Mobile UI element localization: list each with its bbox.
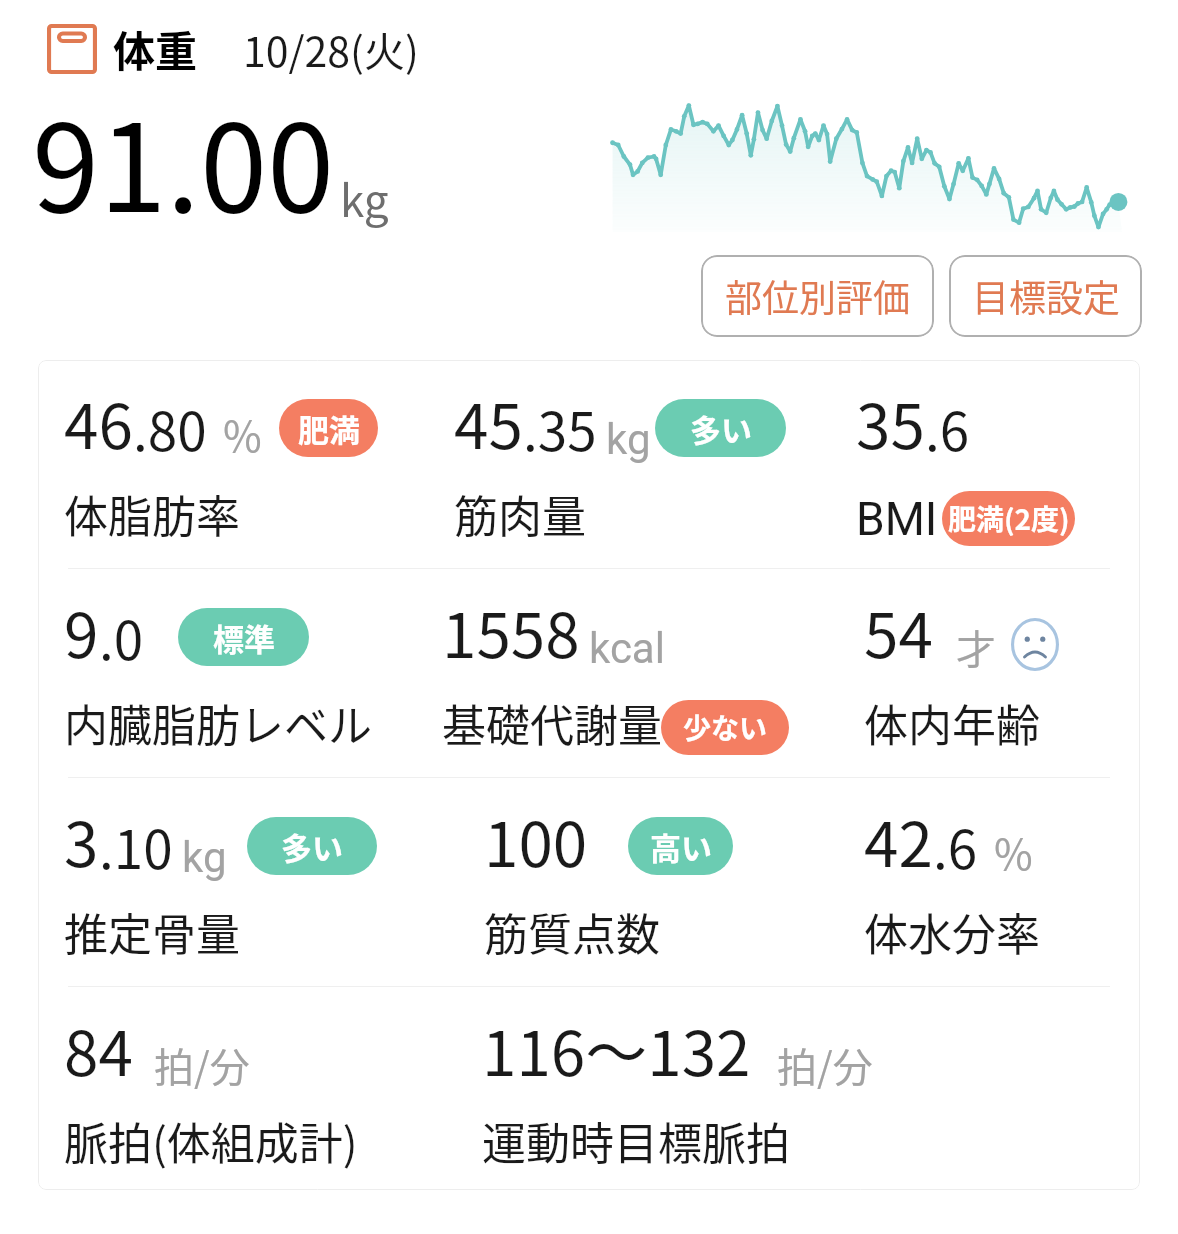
staticText: 体脂肪率 <box>64 482 240 546</box>
staticText: 多い <box>281 824 343 869</box>
staticText: 才 <box>956 618 996 676</box>
button[interactable]: 高い <box>628 817 733 875</box>
staticText: 9 <box>64 586 99 676</box>
staticText: 42 <box>864 795 933 885</box>
staticText: 116〜132 <box>482 1004 751 1094</box>
staticText: 推定骨量 <box>64 900 240 964</box>
button[interactable]: 部位別評価 <box>701 255 934 337</box>
button[interactable]: 標準 <box>178 608 309 666</box>
staticText: 基礎代謝量 <box>442 691 662 755</box>
staticText: kg <box>606 415 651 464</box>
staticText: .80 <box>133 390 207 467</box>
staticText: 1558 <box>442 586 580 676</box>
staticText: 多い <box>690 406 752 451</box>
button[interactable]: 多い <box>655 399 786 457</box>
staticText: 運動時目標脈拍 <box>482 1109 790 1173</box>
staticText: 3 <box>64 795 99 885</box>
staticText: .6 <box>933 808 978 885</box>
staticText: 84 <box>64 1004 133 1094</box>
staticText: 筋肉量 <box>454 482 586 546</box>
staticText: 脈拍(体組成計) <box>64 1109 358 1173</box>
staticText: % <box>994 821 1033 882</box>
staticText: 拍/分 <box>777 1036 873 1094</box>
staticText: 高い <box>650 824 712 869</box>
staticText: 内臓脂肪レベル <box>64 691 372 755</box>
staticText: 体内年齢 <box>864 691 1040 755</box>
button[interactable]: 目標設定 <box>949 255 1142 337</box>
other: Body age mood <box>1010 618 1060 671</box>
button[interactable]: 肥満(2度) <box>942 491 1075 546</box>
staticText: .6 <box>925 390 970 467</box>
staticText: 筋質点数 <box>484 900 660 964</box>
staticText: .10 <box>99 808 173 885</box>
staticText: 目標設定 <box>972 269 1120 323</box>
staticText: kg <box>182 833 227 882</box>
staticText: 35 <box>856 377 925 467</box>
button[interactable]: 多い <box>247 817 377 875</box>
staticText: kg <box>340 166 389 230</box>
staticText: 46 <box>64 377 133 467</box>
staticText: 少ない <box>683 707 768 748</box>
staticText: 91.00 <box>32 72 335 247</box>
staticText: 体水分率 <box>864 900 1040 964</box>
staticText: 肥満(2度) <box>948 498 1070 539</box>
staticText: .0 <box>99 599 144 676</box>
staticText: 100 <box>484 795 588 885</box>
staticText: .35 <box>523 390 597 467</box>
staticText: BMI <box>856 492 938 546</box>
staticText: kcal <box>589 624 665 673</box>
staticText: 54 <box>864 586 933 676</box>
staticText: 45 <box>454 377 523 467</box>
staticText: 体重 <box>113 18 198 79</box>
staticText: % <box>223 403 262 464</box>
button[interactable]: 少ない <box>661 700 789 755</box>
staticText: 肥満 <box>298 406 360 451</box>
button[interactable]: 肥満 <box>279 399 378 457</box>
staticText: 拍/分 <box>154 1036 250 1094</box>
staticText: 標準 <box>213 615 275 660</box>
staticText: 10/28(火) <box>243 19 419 78</box>
staticText: 部位別評価 <box>725 269 910 323</box>
